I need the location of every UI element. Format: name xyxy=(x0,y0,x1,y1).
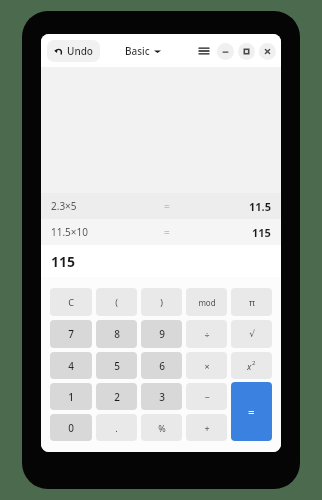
button[interactable]: 11.5×10 xyxy=(41,219,281,245)
staticText: x xyxy=(247,360,252,372)
staticText: ÷ xyxy=(204,328,210,340)
button[interactable]: Close xyxy=(259,43,276,60)
button[interactable]: + xyxy=(186,414,227,441)
button[interactable]: 3 xyxy=(141,383,182,410)
button[interactable]: = xyxy=(231,382,272,441)
button[interactable]: . xyxy=(96,414,137,441)
staticText: = xyxy=(248,404,255,419)
button[interactable]: 4 xyxy=(50,352,92,379)
staticText: √ xyxy=(249,329,255,339)
staticText: 2 xyxy=(114,390,120,404)
button[interactable]: x xyxy=(231,352,272,379)
button[interactable]: Undo xyxy=(47,40,100,62)
button[interactable]: 6 xyxy=(141,352,182,379)
button[interactable]: % xyxy=(141,414,182,441)
button[interactable]: − xyxy=(186,383,227,410)
staticText: 6 xyxy=(159,359,165,373)
button[interactable]: 0 xyxy=(50,414,92,441)
button[interactable]: ( xyxy=(96,288,137,316)
button[interactable]: 7 xyxy=(50,320,92,348)
button[interactable]: π xyxy=(231,288,272,316)
button[interactable]: ) xyxy=(141,288,182,316)
button[interactable]: ÷ xyxy=(186,320,227,348)
button[interactable]: Basic xyxy=(121,40,165,62)
staticText: 0 xyxy=(68,421,74,435)
staticText: × xyxy=(204,360,210,372)
button[interactable]: Minimize xyxy=(217,43,234,60)
staticText: 11.5 xyxy=(249,199,271,214)
staticText: 8 xyxy=(114,327,120,341)
staticText: ( xyxy=(115,296,118,308)
staticText: π xyxy=(249,296,255,308)
staticText: mod xyxy=(198,297,216,308)
staticText: = xyxy=(164,225,170,239)
button[interactable]: mod xyxy=(186,288,227,316)
staticText: Basic xyxy=(125,44,150,58)
button[interactable]: Maximize xyxy=(238,43,255,60)
staticText: 2 xyxy=(252,359,256,367)
button[interactable]: × xyxy=(186,352,227,379)
staticText: 9 xyxy=(159,327,165,341)
staticText: . xyxy=(115,422,118,434)
staticText: 2.3×5 xyxy=(51,199,77,213)
button[interactable]: 9 xyxy=(141,320,182,348)
staticText: 1 xyxy=(68,390,74,404)
staticText: − xyxy=(204,391,210,403)
staticText: Undo xyxy=(67,44,93,58)
staticText: 11.5×10 xyxy=(51,225,88,239)
button[interactable]: 2.3×5 xyxy=(41,193,281,219)
button[interactable]: 1 xyxy=(50,383,92,410)
staticText: 4 xyxy=(68,359,74,373)
staticText: = xyxy=(164,199,170,213)
button[interactable]: √ xyxy=(231,320,272,348)
staticText: 115 xyxy=(252,225,271,240)
staticText: 5 xyxy=(114,359,120,373)
staticText: C xyxy=(68,296,74,308)
staticText: + xyxy=(204,422,210,434)
button[interactable]: Menu xyxy=(195,42,213,60)
staticText: ) xyxy=(160,296,163,308)
staticText: 115 xyxy=(51,252,76,271)
staticText: % xyxy=(158,422,166,434)
button[interactable]: C xyxy=(50,288,92,316)
staticText: 7 xyxy=(68,327,74,341)
button[interactable]: 2 xyxy=(96,383,137,410)
button[interactable]: 8 xyxy=(96,320,137,348)
staticText: 3 xyxy=(159,390,165,404)
button[interactable]: 5 xyxy=(96,352,137,379)
